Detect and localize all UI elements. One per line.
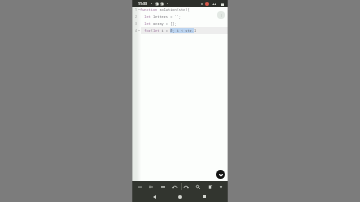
button[interactable]: Redo (181, 182, 190, 191)
button[interactable]: Recent apps (200, 192, 209, 201)
staticText: function solution(str){ (140, 7, 190, 12)
staticText: let array = []; (140, 21, 177, 26)
button[interactable]: Indent (146, 182, 155, 191)
staticText: 4 (135, 28, 137, 33)
staticText: for(let i = 0; i < str.l (140, 28, 197, 33)
button[interactable]: Paste (205, 182, 214, 191)
button[interactable]: More (216, 182, 225, 191)
button[interactable]: Home (175, 192, 184, 201)
button[interactable]: Unindent (135, 182, 144, 191)
button[interactable]: Hide keyboard (216, 170, 225, 179)
staticText: 3 (135, 21, 137, 26)
staticText: 2 (135, 14, 137, 19)
button[interactable]: Hint (217, 11, 225, 19)
staticText: let letters = ''; (140, 14, 181, 19)
button[interactable]: Back (150, 192, 159, 201)
button[interactable]: Tab (158, 182, 167, 191)
button[interactable]: Search (193, 182, 202, 191)
staticText: 1 (135, 7, 137, 12)
button[interactable]: Undo (170, 182, 179, 191)
staticText: 11:33 (138, 1, 147, 6)
